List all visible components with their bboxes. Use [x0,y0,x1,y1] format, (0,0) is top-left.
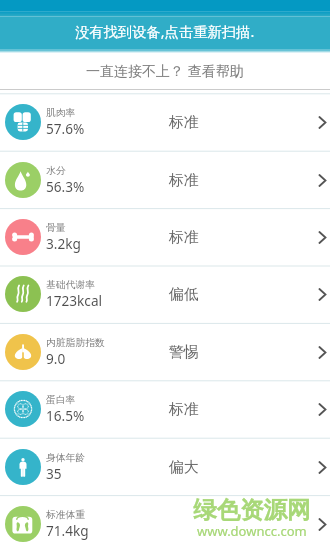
staticText: 9.0 [46,349,66,368]
staticText: 3.2kg [46,234,81,253]
button[interactable]: 蛋白率 [0,380,330,437]
button[interactable]: 没有找到设备,点击重新扫描. [0,13,330,50]
button[interactable]: 肌肉率 [0,93,330,150]
staticText: 71.4kg [46,521,89,540]
button[interactable]: 身体年龄 [0,438,330,495]
staticText: 标准 [169,113,199,132]
staticText: 一直连接不上？ 查看帮助 [86,61,244,80]
button[interactable]: 基础代谢率 [0,265,330,322]
staticText: 标准 [169,400,199,419]
other: 查看详情 [306,457,330,477]
staticText: 57.6% [46,119,85,138]
staticText: 警惕 [169,343,199,362]
other: 查看详情 [306,399,330,419]
button[interactable]: 内脏脂肪指数 [0,323,330,380]
button[interactable]: 标准体重 [0,495,330,550]
button[interactable]: 水分 [0,151,330,208]
other: 查看详情 [306,284,330,304]
staticText: 16.5% [46,406,85,425]
other: 查看详情 [306,342,330,362]
staticText: 身体年龄 [46,452,86,464]
staticText: 内脏脂肪指数 [46,337,105,349]
staticText: 偏大 [169,458,199,477]
staticText: 标准体重 [46,509,86,521]
staticText: 偏低 [169,285,199,304]
staticText: 35 [46,464,62,483]
staticText: 水分 [46,165,66,177]
button[interactable]: 一直连接不上？ 查看帮助 [0,51,330,89]
staticText: 绿色资源网 [193,495,311,525]
button[interactable]: 骨量 [0,208,330,265]
other: 查看详情 [306,112,330,132]
staticText: 没有找到设备,点击重新扫描. [75,22,255,42]
staticText: 骨量 [46,222,66,234]
staticText: 蛋白率 [46,394,76,406]
staticText: 56.3% [46,177,85,196]
staticText: 标准 [169,171,199,190]
other: 查看详情 [306,514,330,534]
other: 查看详情 [306,227,330,247]
staticText: www.downcc.com [197,522,307,540]
staticText: 基础代谢率 [46,279,95,291]
staticText: 标准 [169,228,199,247]
other: 查看详情 [306,170,330,190]
staticText: 肌肉率 [46,107,76,119]
staticText: 1723kcal [46,291,103,310]
